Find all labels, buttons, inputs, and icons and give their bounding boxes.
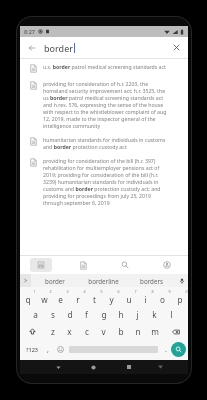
button[interactable]: 4 <box>69 288 86 306</box>
staticText: d <box>67 309 73 320</box>
button[interactable]: 7 <box>120 288 137 306</box>
staticText: borders <box>140 277 163 285</box>
staticText: , <box>47 345 49 355</box>
button[interactable]: Clear search <box>170 41 183 54</box>
button[interactable]: v <box>95 323 112 340</box>
button[interactable]: 3 <box>52 288 69 306</box>
staticText: 7 <box>134 289 137 294</box>
button[interactable]: Hide keyboard <box>146 360 174 374</box>
button[interactable]: j <box>129 306 146 323</box>
button[interactable]: providing for consideration of the bill … <box>20 153 188 209</box>
button[interactable]: x <box>61 323 78 340</box>
button[interactable]: 5 <box>86 288 103 306</box>
button[interactable]: 2 <box>36 288 52 306</box>
staticText: u.s. border patrol medical screening sta… <box>43 63 166 70</box>
staticText: 3 <box>66 289 69 294</box>
button[interactable]: Bills <box>72 258 94 272</box>
button[interactable]: Home <box>76 360 111 374</box>
button[interactable]: a <box>27 306 44 323</box>
button[interactable]: Recent apps <box>111 360 146 374</box>
button[interactable]: Emoji <box>54 340 67 359</box>
button[interactable]: Period <box>160 340 171 359</box>
button[interactable]: 9 <box>154 288 171 306</box>
staticText: o <box>160 294 165 305</box>
staticText: q <box>25 294 31 305</box>
staticText: 8 <box>151 289 154 294</box>
staticText: 6 <box>117 289 120 294</box>
staticText: 0 <box>185 289 188 294</box>
staticText: z <box>51 326 55 337</box>
staticText: border <box>45 277 65 285</box>
button[interactable]: 8 <box>137 288 154 306</box>
staticText: r <box>76 294 80 305</box>
button[interactable]: n <box>129 323 146 340</box>
button[interactable]: borderline <box>79 274 127 287</box>
button[interactable]: Search <box>171 342 186 357</box>
button[interactable]: l <box>163 306 180 323</box>
staticText: humanitarian standards for individuals i… <box>43 136 166 150</box>
staticText: b <box>118 326 124 337</box>
staticText: k <box>152 309 157 320</box>
button[interactable]: Search <box>114 258 136 272</box>
staticText: 8:27 <box>24 28 35 35</box>
button[interactable]: Account <box>156 258 178 272</box>
button[interactable]: Voice input <box>175 274 188 287</box>
staticText: e <box>58 294 63 305</box>
button[interactable]: border <box>31 274 79 287</box>
button[interactable]: Back <box>41 360 76 374</box>
staticText: borderline <box>88 277 119 285</box>
button[interactable]: borders <box>127 274 175 287</box>
staticText: t <box>93 294 96 305</box>
staticText: 4 <box>83 289 86 294</box>
button[interactable]: k <box>146 306 163 323</box>
staticText: p <box>177 294 183 305</box>
button[interactable]: z <box>44 323 61 340</box>
staticText: s <box>51 309 55 320</box>
staticText: 2 <box>49 289 52 294</box>
button[interactable]: Shift <box>20 323 44 340</box>
staticText: m <box>151 326 159 337</box>
staticText: l <box>170 309 173 320</box>
staticText: f <box>85 309 88 320</box>
staticText: providing for consideration of h.r. 2203… <box>43 80 167 129</box>
button[interactable]: 0 <box>171 288 188 306</box>
staticText: n <box>135 326 141 337</box>
button[interactable]: g <box>95 306 112 323</box>
button[interactable]: Backspace <box>163 323 188 340</box>
button[interactable]: b <box>112 323 129 340</box>
button[interactable]: Comma <box>42 340 54 359</box>
button[interactable]: s <box>44 306 61 323</box>
staticText: h <box>118 309 124 320</box>
staticText: a <box>33 309 38 320</box>
staticText: u <box>126 294 132 305</box>
button[interactable]: h <box>112 306 129 323</box>
button[interactable]: f <box>78 306 95 323</box>
staticText: . <box>165 345 167 355</box>
staticText: 5 <box>100 289 103 294</box>
button[interactable]: providing for consideration of h.r. 2203… <box>20 76 188 132</box>
button[interactable]: 6 <box>103 288 120 306</box>
staticText: x <box>67 326 72 337</box>
button[interactable]: Expand suggestions <box>20 274 31 287</box>
button[interactable]: Dashboard <box>30 258 52 272</box>
staticText: c <box>85 326 89 337</box>
button[interactable]: c <box>78 323 95 340</box>
staticText: 1 <box>33 289 36 294</box>
staticText: providing for consideration of the bill … <box>43 157 161 206</box>
staticText: y <box>109 294 114 305</box>
button[interactable]: humanitarian standards for individuals i… <box>20 132 188 153</box>
button[interactable]: u.s. border patrol medical screening sta… <box>20 59 188 76</box>
staticText: ?123 <box>26 346 38 353</box>
staticText: 9 <box>168 289 171 294</box>
staticText: i <box>144 294 147 305</box>
staticText: v <box>101 326 106 337</box>
staticText: j <box>136 309 139 320</box>
staticText: g <box>101 309 107 320</box>
button[interactable]: Back <box>25 41 38 54</box>
staticText: border <box>44 42 73 54</box>
button[interactable]: ?123 <box>22 340 42 359</box>
button[interactable]: m <box>146 323 163 340</box>
button[interactable]: 1 <box>20 288 36 306</box>
button[interactable]: d <box>61 306 78 323</box>
